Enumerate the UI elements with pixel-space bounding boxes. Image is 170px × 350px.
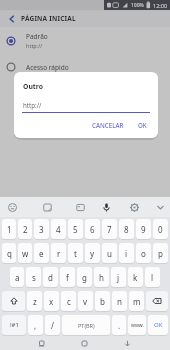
button[interactable]: o xyxy=(136,243,151,263)
staticText: 1 xyxy=(7,224,12,235)
button[interactable]: h xyxy=(94,267,109,287)
staticText: 5 xyxy=(73,224,78,235)
button[interactable]: q xyxy=(2,243,16,263)
button[interactable]: Padrão xyxy=(0,27,170,54)
button[interactable]: OK xyxy=(148,315,168,335)
staticText: v xyxy=(83,296,88,307)
button[interactable]: 0 xyxy=(153,219,168,239)
button[interactable]: , xyxy=(28,315,43,335)
button[interactable]: e xyxy=(34,243,49,263)
button[interactable] xyxy=(2,291,25,311)
staticText: q xyxy=(7,248,12,259)
staticText: s xyxy=(32,272,36,283)
staticText: u xyxy=(107,248,112,259)
staticText: http:// xyxy=(23,101,42,109)
button[interactable]: r xyxy=(51,243,66,263)
button[interactable]: CANCELAR xyxy=(89,118,127,132)
staticText: o xyxy=(141,248,146,259)
staticText: l xyxy=(151,272,154,283)
button[interactable]: t xyxy=(68,243,83,263)
button[interactable]: d xyxy=(43,267,58,287)
staticText: d xyxy=(48,272,53,283)
staticText: 2 xyxy=(23,224,28,235)
staticText: 12:00 xyxy=(153,2,168,9)
button[interactable]: a xyxy=(10,267,24,287)
button[interactable]: v xyxy=(78,291,93,311)
button[interactable]: j xyxy=(111,267,126,287)
button[interactable]: www. xyxy=(128,315,146,335)
staticText: x xyxy=(49,296,54,307)
staticText: http:// xyxy=(26,42,43,49)
staticText: 0 xyxy=(158,224,163,235)
button[interactable]: 3 xyxy=(34,219,49,239)
button[interactable]: OK xyxy=(135,118,150,132)
button[interactable]: 5 xyxy=(68,219,83,239)
button[interactable]: 7 xyxy=(102,219,117,239)
button[interactable]: z xyxy=(27,291,42,311)
button[interactable]: w xyxy=(18,243,32,263)
staticText: f xyxy=(66,272,69,283)
staticText: PT(BR) xyxy=(78,322,95,329)
button[interactable] xyxy=(39,197,55,217)
button[interactable]: g xyxy=(77,267,92,287)
button[interactable] xyxy=(98,197,114,217)
staticText: 7 xyxy=(107,224,112,235)
button[interactable]: b xyxy=(95,291,110,311)
button[interactable]: s xyxy=(26,267,41,287)
button[interactable] xyxy=(30,337,52,350)
staticText: e xyxy=(39,248,44,259)
staticText: . xyxy=(118,320,121,331)
button[interactable]: / xyxy=(45,315,60,335)
button[interactable]: f xyxy=(60,267,75,287)
button[interactable]: m xyxy=(129,291,144,311)
button[interactable] xyxy=(126,197,142,217)
button[interactable]: 8 xyxy=(119,219,134,239)
button[interactable] xyxy=(152,197,168,217)
button[interactable]: l xyxy=(145,267,160,287)
staticText: g xyxy=(82,272,87,283)
staticText: 6 xyxy=(90,224,95,235)
staticText: p xyxy=(158,248,163,259)
button[interactable]: 4 xyxy=(51,219,66,239)
staticText: k xyxy=(133,272,138,283)
button[interactable] xyxy=(146,291,168,311)
staticText: y xyxy=(90,248,95,259)
button[interactable]: . xyxy=(112,315,126,335)
staticText: m xyxy=(133,296,141,307)
button[interactable]: i xyxy=(119,243,134,263)
staticText: c xyxy=(67,296,71,307)
staticText: , xyxy=(34,320,37,331)
staticText: r xyxy=(57,248,61,259)
staticText: PÁGINA INICIAL xyxy=(21,14,76,23)
staticText: CANCELAR xyxy=(92,121,124,129)
button[interactable]: PT(BR) xyxy=(62,315,110,335)
button[interactable]: p xyxy=(153,243,168,263)
staticText: www. xyxy=(131,322,144,329)
button[interactable] xyxy=(4,197,20,217)
button[interactable]: !#1 xyxy=(2,315,26,335)
staticText: a xyxy=(15,272,20,283)
button[interactable] xyxy=(72,197,88,217)
button[interactable]: c xyxy=(61,291,76,311)
staticText: 9 xyxy=(141,224,146,235)
button[interactable] xyxy=(73,337,95,350)
button[interactable]: y xyxy=(85,243,100,263)
button[interactable]: x xyxy=(44,291,59,311)
staticText: n xyxy=(117,296,122,307)
staticText: z xyxy=(33,296,37,307)
button[interactable]: u xyxy=(102,243,117,263)
button[interactable]: 1 xyxy=(2,219,16,239)
staticText: 8 xyxy=(124,224,129,235)
button[interactable]: n xyxy=(112,291,127,311)
staticText: OK xyxy=(138,121,147,129)
staticText: w xyxy=(22,248,29,259)
button[interactable]: k xyxy=(128,267,143,287)
button[interactable]: Acesso rápido xyxy=(0,54,170,80)
staticText: h xyxy=(99,272,104,283)
button[interactable]: PÁGINA INICIAL xyxy=(0,10,170,27)
button[interactable]: 6 xyxy=(85,219,100,239)
staticText: OK xyxy=(154,321,163,329)
button[interactable]: 9 xyxy=(136,219,151,239)
button[interactable] xyxy=(116,337,138,350)
button[interactable]: 2 xyxy=(18,219,32,239)
